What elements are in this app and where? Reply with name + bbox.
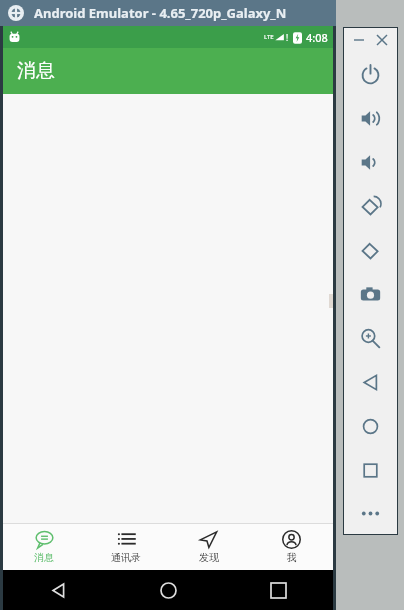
button[interactable]: Minimize [350, 31, 368, 49]
button[interactable]: Screenshot [344, 272, 397, 316]
button[interactable]: Rotate left [344, 184, 397, 228]
staticText: 消息 [17, 59, 55, 83]
button[interactable]: Back [344, 360, 397, 404]
button[interactable]: Rotate right [344, 228, 397, 272]
button[interactable]: Volume up [344, 96, 397, 140]
button[interactable]: Power [344, 52, 397, 96]
staticText: ! [286, 32, 289, 43]
staticText: 通讯录 [111, 551, 141, 564]
button[interactable]: Home [344, 404, 397, 448]
button[interactable]: Back [3, 570, 113, 610]
button[interactable]: 消息 [3, 524, 85, 570]
staticText: LTE [264, 33, 274, 41]
staticText: 消息 [34, 551, 54, 564]
button[interactable]: Volume down [344, 140, 397, 184]
staticText: 我 [287, 551, 297, 564]
button[interactable]: 我 [250, 524, 333, 570]
button[interactable]: 通讯录 [85, 524, 167, 570]
button[interactable]: Home [113, 570, 223, 610]
staticText: Android Emulator - 4.65_720p_Galaxy_N [34, 4, 287, 22]
button[interactable]: Close [373, 31, 391, 49]
staticText: 4:08 [306, 30, 328, 45]
button[interactable]: Overview [344, 448, 397, 492]
button[interactable]: Recents [223, 570, 333, 610]
button[interactable]: More [344, 492, 397, 534]
button[interactable]: 发现 [167, 524, 250, 570]
staticText: 发现 [199, 551, 219, 564]
button[interactable]: Zoom [344, 316, 397, 360]
